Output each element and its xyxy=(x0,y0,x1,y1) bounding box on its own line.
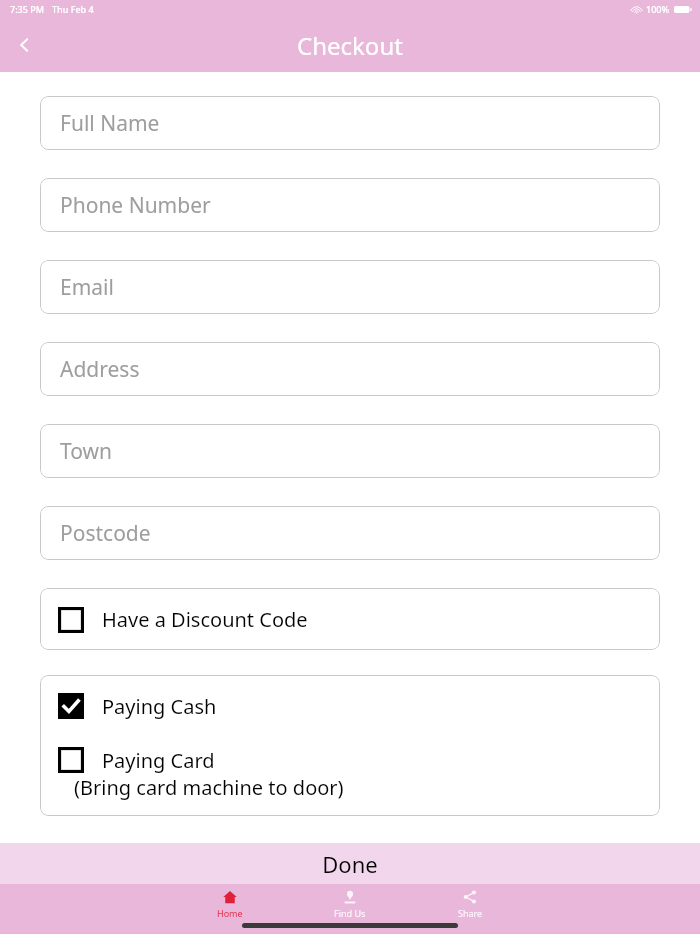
button[interactable]: Phone Number xyxy=(40,178,660,232)
button[interactable]: Full Name xyxy=(40,96,660,150)
staticText: 100% xyxy=(646,3,670,15)
button[interactable]: Back xyxy=(0,21,48,69)
button[interactable]: Paying Card xyxy=(40,737,660,816)
staticText: Thu Feb 4 xyxy=(52,3,94,15)
button[interactable]: Address xyxy=(40,342,660,396)
button[interactable]: Home xyxy=(200,890,260,919)
staticText: Full Name xyxy=(60,109,160,138)
staticText: 7:35 PM xyxy=(10,3,44,15)
button[interactable]: Paying Cash xyxy=(40,675,660,737)
button[interactable]: Done xyxy=(0,843,700,884)
staticText: Address xyxy=(60,355,140,384)
staticText: Postcode xyxy=(60,519,151,548)
staticText: Paying Card xyxy=(102,747,215,774)
staticText: Done xyxy=(322,849,378,879)
staticText: Find Us xyxy=(334,907,366,919)
staticText: Town xyxy=(60,437,112,466)
staticText: Phone Number xyxy=(60,191,211,220)
staticText: Email xyxy=(60,273,114,302)
button[interactable]: Share xyxy=(440,890,500,919)
button[interactable]: Email xyxy=(40,260,660,314)
button[interactable]: Town xyxy=(40,424,660,478)
staticText: Have a Discount Code xyxy=(102,606,308,633)
staticText: Checkout xyxy=(297,29,403,62)
button[interactable]: Postcode xyxy=(40,506,660,560)
staticText: Share xyxy=(458,907,483,919)
staticText: (Bring card machine to door) xyxy=(74,774,344,801)
button[interactable]: Have a Discount Code xyxy=(40,588,660,650)
button[interactable]: Find Us xyxy=(320,890,380,919)
staticText: Home xyxy=(217,907,243,919)
staticText: Paying Cash xyxy=(102,693,217,720)
